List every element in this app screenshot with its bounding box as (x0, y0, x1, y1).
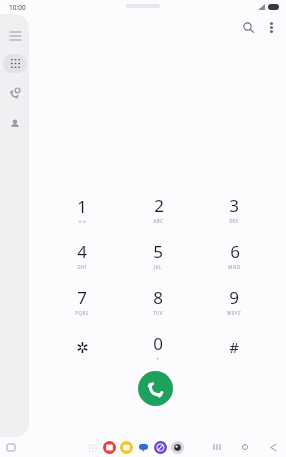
button[interactable]: Recents (4, 82, 26, 104)
button[interactable]: All apps (87, 442, 99, 454)
button[interactable]: Home (238, 440, 252, 454)
button[interactable]: 5 (130, 232, 186, 278)
button[interactable]: Chat (137, 441, 150, 454)
button[interactable]: 8 (130, 278, 186, 324)
button[interactable]: Search (236, 15, 260, 39)
button[interactable]: 1 (54, 186, 110, 232)
staticText: + (156, 356, 160, 362)
staticText: GHI (77, 264, 87, 270)
staticText: 2 (154, 194, 164, 217)
button[interactable]: Back (266, 440, 280, 454)
staticText: WXYZ (227, 310, 241, 316)
staticText: 5 (153, 240, 163, 263)
staticText: ✲ (76, 339, 89, 356)
button[interactable]: Compass (154, 441, 167, 454)
button[interactable]: 9 (206, 278, 262, 324)
button[interactable]: 4 (54, 232, 110, 278)
staticText: 1 (77, 195, 87, 218)
button[interactable]: More options (260, 16, 282, 38)
staticText: ABC (153, 218, 164, 224)
staticText: PQRS (75, 310, 89, 316)
button[interactable]: Call (138, 371, 173, 406)
button[interactable]: Menu (4, 25, 26, 47)
button[interactable]: Keyboard (6, 442, 16, 452)
staticText: 0 (153, 332, 163, 355)
button[interactable]: # (206, 324, 262, 370)
staticText: 8 (153, 286, 163, 309)
button[interactable]: 7 (54, 278, 110, 324)
staticText: 6 (230, 240, 240, 263)
button[interactable]: 3 (206, 186, 262, 232)
staticText: 4 (77, 240, 87, 263)
staticText: 9 (229, 286, 239, 309)
staticText: 7 (77, 286, 87, 309)
button[interactable]: Gmail (103, 441, 116, 454)
button[interactable]: ✲ (54, 324, 110, 370)
staticText: TUV (153, 310, 163, 316)
button[interactable]: Camera (171, 441, 184, 454)
button[interactable]: Messages (120, 441, 133, 454)
button[interactable]: 0 (130, 324, 186, 370)
staticText: DEF (229, 218, 239, 224)
staticText: ∞∞ (78, 219, 87, 224)
button[interactable]: Keypad (3, 54, 27, 73)
button[interactable]: 6 (206, 232, 262, 278)
staticText: 3 (229, 194, 239, 217)
button[interactable]: Contacts (4, 113, 26, 135)
staticText: JKL (154, 264, 162, 270)
button[interactable]: Recent apps (210, 440, 224, 454)
staticText: # (229, 337, 239, 357)
staticText: 10:00 (9, 3, 26, 12)
staticText: MNO (228, 264, 241, 270)
button[interactable]: 2 (130, 186, 186, 232)
